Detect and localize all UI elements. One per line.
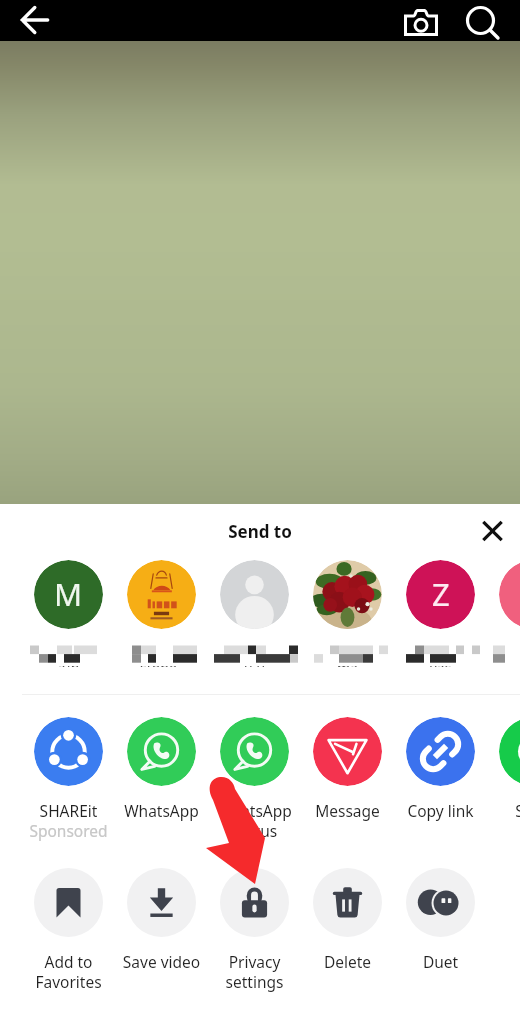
button[interactable]: Save video (115, 868, 208, 1008)
staticText: Z (432, 573, 450, 615)
button[interactable]: WhatsApp Status (208, 717, 301, 857)
staticText: Add to Favorites (22, 951, 115, 992)
button[interactable]: b (487, 552, 520, 682)
button[interactable]: Snap (487, 717, 520, 857)
staticText: Delete (301, 951, 394, 972)
staticText: Snap (487, 800, 520, 821)
button[interactable]: Search (460, 0, 506, 46)
button[interactable]: Close (470, 509, 514, 553)
button[interactable]: ma (301, 552, 394, 682)
button[interactable]: Camera (398, 1, 444, 47)
staticText: M (54, 573, 83, 615)
button[interactable]: WhatsApp (115, 717, 208, 857)
button[interactable]: Privacy settings (208, 868, 301, 1008)
staticText: SHAREit (22, 800, 115, 821)
button[interactable]: SHAREit (22, 717, 115, 857)
button[interactable]: Duet (394, 868, 487, 1008)
staticText: WhatsApp Status (208, 800, 301, 841)
staticText: Copy link (394, 800, 487, 821)
button[interactable]: Delete (301, 868, 394, 1008)
staticText: Sponsored (22, 820, 115, 841)
staticText: u.ti (208, 666, 301, 667)
button[interactable]: Z (394, 552, 487, 682)
staticText: Save video (115, 951, 208, 972)
staticText: Send to (0, 520, 520, 543)
button[interactable]: Copy link (394, 717, 487, 857)
staticText: yas (394, 666, 487, 667)
staticText: Privacy settings (208, 951, 301, 992)
button[interactable]: Message (301, 717, 394, 857)
staticText: Duet (394, 951, 487, 972)
button[interactable]: stone_ (115, 552, 208, 682)
staticText: Message (301, 800, 394, 821)
button[interactable]: Back (12, 0, 58, 43)
staticText: stone_ (115, 666, 208, 667)
button[interactable]: M (22, 552, 115, 682)
button[interactable]: Add to Favorites (22, 868, 115, 1008)
button[interactable]: u.ti (208, 552, 301, 682)
staticText: WhatsApp (115, 800, 208, 821)
staticText: ma (301, 666, 394, 667)
staticText: a/b (22, 666, 115, 667)
